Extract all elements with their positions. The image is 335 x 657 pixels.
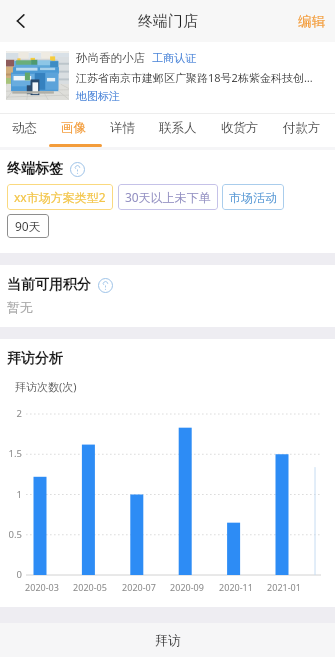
staticText: 江苏省南京市建邺区广聚路18号2栋紫金科技创… <box>76 70 313 85</box>
staticText: 2021-01 <box>267 581 301 593</box>
staticText: 0.5 <box>8 528 22 541</box>
button[interactable]: 编辑 <box>288 0 335 42</box>
staticText: 孙尚香的小店 <box>76 51 145 65</box>
button[interactable]: 付款方 <box>271 114 333 147</box>
button[interactable]: 30天以上未下单 <box>118 184 218 210</box>
staticText: 终端标签 <box>7 160 63 178</box>
staticText: xx市场方案类型2 <box>14 189 106 205</box>
staticText: 拜访 <box>155 632 181 648</box>
staticText: 付款方 <box>283 120 321 136</box>
button[interactable]: 收货方 <box>209 114 271 147</box>
staticText: 2020-05 <box>73 581 107 593</box>
staticText: 拜访分析 <box>7 350 63 368</box>
staticText: 0 <box>16 568 22 581</box>
staticText: 联系人 <box>159 120 197 136</box>
staticText: 终端门店 <box>138 12 198 31</box>
button[interactable]: xx市场方案类型2 <box>7 184 113 210</box>
staticText: 市场活动 <box>229 190 277 205</box>
button[interactable]: 画像 <box>49 114 98 147</box>
staticText: 2020-07 <box>122 581 156 593</box>
staticText: 拜访次数(次) <box>15 379 77 394</box>
button[interactable]: 市场活动 <box>222 184 284 210</box>
staticText: 2020-09 <box>170 581 204 593</box>
staticText: 90天 <box>15 218 41 234</box>
staticText: 画像 <box>61 120 86 136</box>
staticText: 1.5 <box>8 447 22 460</box>
staticText: 2020-03 <box>25 581 59 593</box>
button[interactable]: 90天 <box>7 214 49 238</box>
button[interactable]: 工商认证 <box>152 51 196 65</box>
staticText: 2020-11 <box>219 581 253 593</box>
button[interactable]: 联系人 <box>147 114 209 147</box>
button[interactable]: 地图标注 <box>76 89 120 103</box>
staticText: 地图标注 <box>76 89 120 103</box>
staticText: 编辑 <box>298 13 325 30</box>
staticText: 30天以上未下单 <box>125 189 211 205</box>
button[interactable]: 拜访 <box>0 623 335 657</box>
staticText: 1 <box>16 488 22 501</box>
button[interactable]: Back <box>0 0 42 42</box>
staticText: 暂无 <box>7 299 33 315</box>
staticText: 动态 <box>12 120 37 136</box>
staticText: 收货方 <box>221 120 259 136</box>
button[interactable]: 详情 <box>98 114 147 147</box>
staticText: 2 <box>16 407 22 420</box>
staticText: 工商认证 <box>152 51 196 65</box>
button[interactable]: 动态 <box>0 114 49 147</box>
staticText: 详情 <box>110 120 135 136</box>
staticText: 当前可用积分 <box>7 276 91 294</box>
